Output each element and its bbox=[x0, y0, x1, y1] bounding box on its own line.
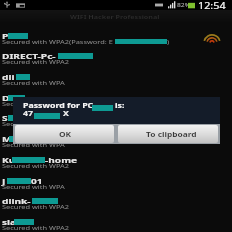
staticText: P bbox=[2, 31, 9, 41]
staticText: Secured with WPA bbox=[2, 120, 65, 127]
staticText: X bbox=[63, 109, 70, 118]
staticText: Secured with WPA2 bbox=[2, 100, 69, 107]
staticText: D bbox=[2, 93, 10, 103]
staticText: OK bbox=[59, 130, 72, 138]
button[interactable]: P bbox=[0, 26, 232, 47]
button[interactable]: dli bbox=[0, 67, 232, 88]
staticText: S bbox=[2, 113, 9, 123]
staticText: Secured with WPA2(Password: E bbox=[2, 38, 114, 45]
staticText: WIFI Hacker Professional bbox=[70, 13, 160, 20]
button[interactable]: D bbox=[0, 88, 232, 109]
staticText: J bbox=[2, 176, 6, 186]
staticText: Ku bbox=[2, 155, 15, 165]
staticText: dli bbox=[2, 72, 15, 82]
staticText: To clipboard bbox=[146, 130, 197, 138]
button[interactable]: DIRECT-Pc- bbox=[0, 46, 232, 67]
staticText: 01 bbox=[31, 176, 43, 186]
staticText: Secured with WPA2 bbox=[2, 162, 69, 169]
staticText: 82% bbox=[177, 2, 190, 9]
button[interactable]: J bbox=[0, 171, 232, 192]
staticText: M bbox=[2, 134, 13, 144]
staticText: ) bbox=[167, 38, 170, 45]
button[interactable]: dlink- bbox=[0, 191, 232, 212]
staticText: Secured with WPA bbox=[2, 183, 65, 190]
staticText: 12:54 bbox=[198, 0, 226, 11]
staticText: sla bbox=[2, 217, 17, 227]
staticText: Secured with WPA bbox=[2, 79, 65, 86]
staticText: dlink- bbox=[2, 196, 32, 206]
staticText: -home bbox=[45, 155, 77, 165]
button[interactable]: sla bbox=[0, 212, 232, 232]
staticText: Secured with WPA2 bbox=[2, 224, 69, 231]
staticText: Password for PC bbox=[23, 101, 95, 110]
button[interactable]: S bbox=[0, 108, 232, 129]
other: Wi-Fi signal strength bbox=[204, 33, 220, 43]
staticText: Secured with WPA2 bbox=[2, 58, 69, 65]
button[interactable]: To clipboard bbox=[118, 125, 218, 143]
button[interactable]: Ku bbox=[0, 150, 232, 171]
button[interactable]: M bbox=[0, 129, 232, 150]
staticText: Secured with WPA bbox=[2, 141, 65, 148]
staticText: DIRECT-Pc- bbox=[2, 51, 56, 61]
staticText: is: bbox=[115, 101, 126, 110]
staticText: Secured with WPA2 bbox=[2, 203, 69, 210]
button[interactable]: OK bbox=[15, 125, 114, 143]
staticText: 47 bbox=[23, 109, 34, 118]
